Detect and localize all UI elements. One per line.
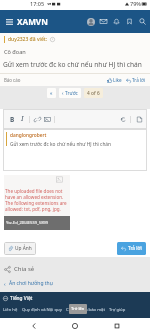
button[interactable]: I bbox=[17, 114, 27, 124]
button[interactable]: 4 of 6 bbox=[84, 88, 103, 98]
button[interactable]: Chính sách bảo mật bbox=[66, 307, 105, 313]
staticText: Cô đoan bbox=[4, 48, 26, 56]
button[interactable]: Tiếng Việt bbox=[3, 295, 33, 302]
button[interactable]: Insert image bbox=[42, 114, 52, 124]
button[interactable]: Liên hệ bbox=[3, 307, 18, 313]
button[interactable]: Bookmarks bbox=[123, 15, 136, 28]
button[interactable]: Inbox bbox=[97, 15, 110, 28]
button[interactable]: Menu bbox=[3, 15, 16, 28]
staticText: The uploaded file does not have an allow… bbox=[5, 188, 67, 212]
button[interactable]: B bbox=[7, 114, 17, 124]
button[interactable]: Like bbox=[107, 77, 122, 83]
button[interactable]: Back bbox=[26, 318, 42, 334]
button[interactable]: Up Ảnh bbox=[4, 242, 36, 255]
button[interactable]: Trả lời bbox=[126, 77, 146, 83]
button[interactable]: XAMVN bbox=[17, 14, 48, 29]
staticText: ‹ bbox=[62, 90, 65, 96]
button[interactable]: Báo cáo bbox=[4, 77, 21, 83]
staticText: ‹ bbox=[4, 280, 6, 287]
staticText: 4 of 6 bbox=[87, 90, 100, 96]
button[interactable]: Home bbox=[67, 318, 83, 334]
staticText: Trước bbox=[65, 90, 78, 96]
staticText: Trở lên bbox=[71, 306, 85, 312]
staticText: danglongrobert bbox=[10, 132, 47, 139]
button[interactable]: Undo bbox=[118, 114, 128, 124]
staticText: Chia sẻ bbox=[14, 265, 35, 273]
button[interactable]: Recents bbox=[109, 318, 125, 334]
button[interactable]: ‹ bbox=[0, 276, 150, 290]
staticText: Up Ảnh bbox=[15, 245, 32, 252]
button[interactable]: Trở lên bbox=[69, 304, 87, 314]
staticText: Gửi xem trước đc ko chứ nếu như HJ thì c… bbox=[3, 60, 142, 69]
button[interactable]: Account bbox=[84, 15, 97, 28]
staticText: 79% bbox=[130, 0, 141, 7]
button[interactable]: Search bbox=[136, 15, 149, 28]
button[interactable]: duy2323 đã viết: bbox=[8, 36, 48, 43]
button[interactable]: Drafts bbox=[134, 114, 144, 124]
staticText: « bbox=[50, 90, 53, 96]
staticText: Gửi xem trước đc ko chứ nếu như HJ thì c… bbox=[10, 141, 112, 148]
button[interactable]: Attachment bbox=[4, 175, 70, 230]
button[interactable]: Insert link bbox=[32, 114, 42, 124]
button[interactable]: ‹ bbox=[59, 88, 81, 98]
staticText: B bbox=[10, 115, 15, 124]
staticText: Ăn chơi hưởng thụ bbox=[9, 280, 53, 287]
button[interactable]: First page bbox=[47, 88, 56, 98]
button[interactable]: Alerts bbox=[110, 15, 123, 28]
staticText: Tiếng Việt bbox=[10, 295, 33, 302]
button[interactable]: Trả lời bbox=[117, 242, 146, 255]
staticText: Like bbox=[113, 77, 122, 83]
staticText: I bbox=[21, 114, 24, 124]
button[interactable]: Chia sẻ bbox=[0, 262, 150, 276]
staticText: Trả lời bbox=[132, 77, 146, 83]
staticText: Trả lời bbox=[128, 245, 142, 252]
button[interactable]: Quy định và Nội quy bbox=[22, 307, 62, 313]
staticText: Yw-Ed_2IE4E5S9_5899 bbox=[6, 220, 49, 226]
staticText: 17:05 bbox=[30, 0, 45, 7]
button[interactable]: Trợ giúp bbox=[109, 307, 126, 313]
